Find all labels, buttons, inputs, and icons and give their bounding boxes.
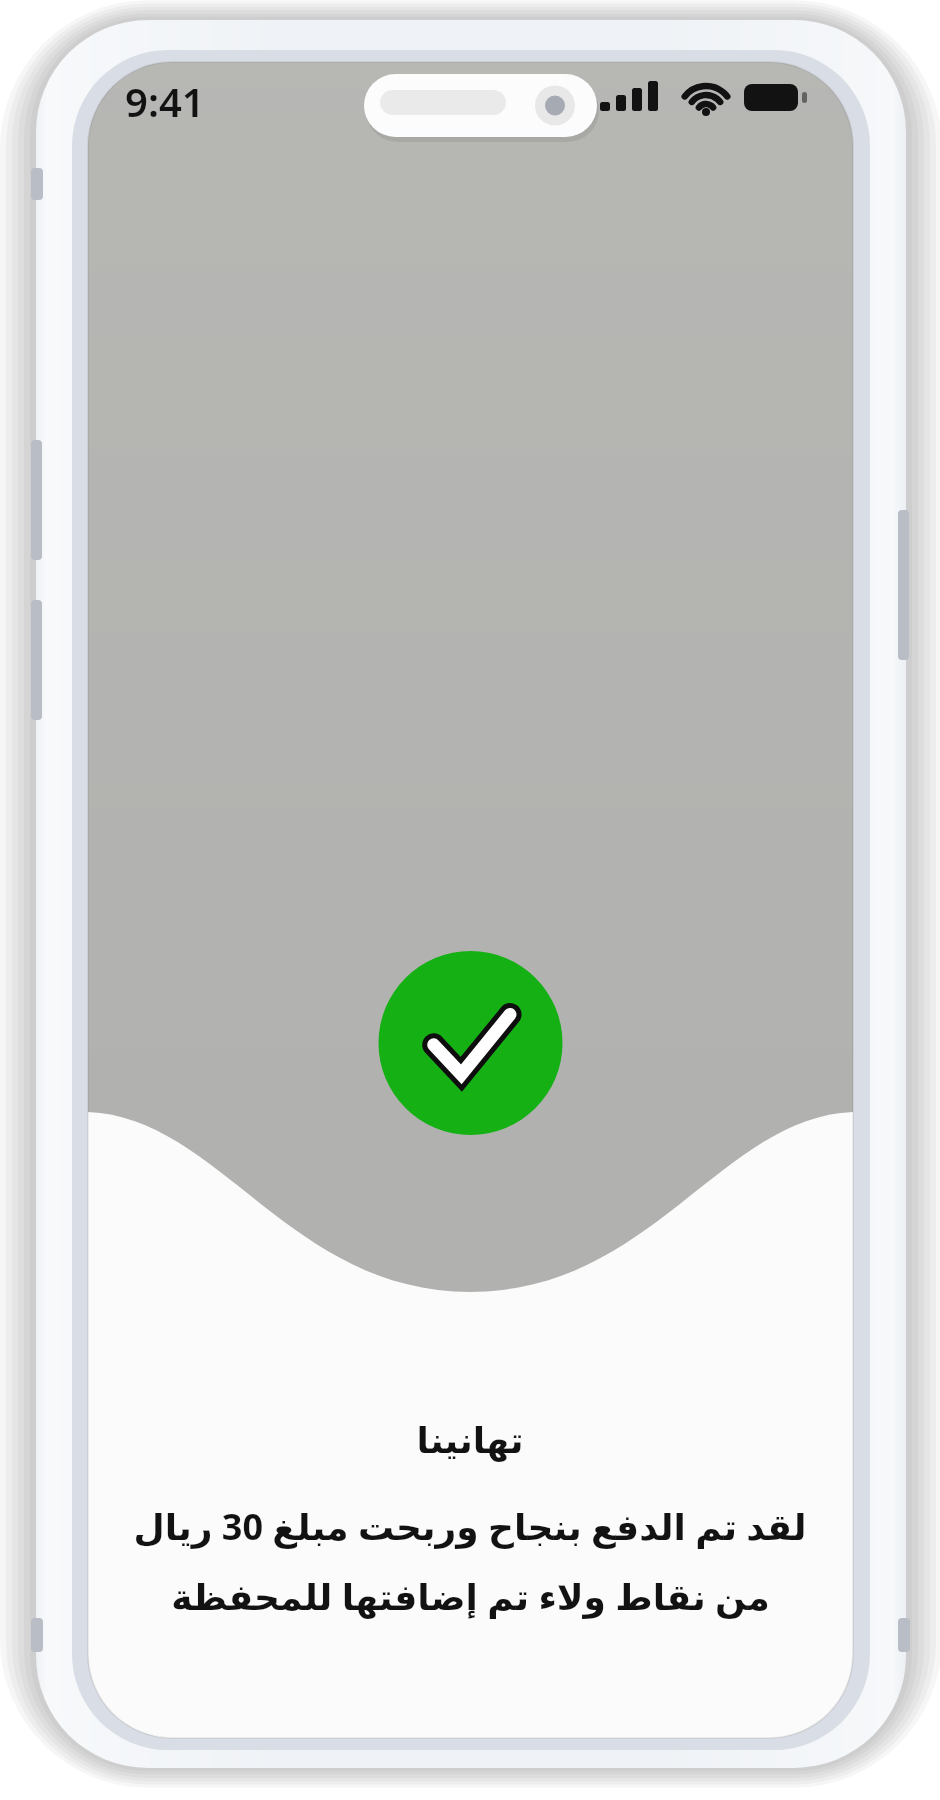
staticText: لقد تم الدفع بنجاح وربحت مبلغ 30 ريال [133,1502,807,1551]
staticText: 9:41 [125,74,205,128]
staticText: من نقاط ولاء تم إضافتها للمحفظة [171,1572,770,1621]
button[interactable]: Payment successful [378,951,562,1135]
staticText: تهانينا [416,1420,524,1462]
